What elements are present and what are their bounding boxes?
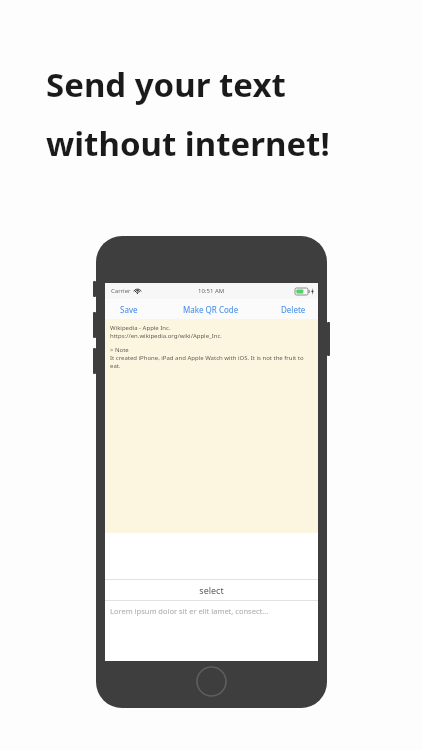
button[interactable]: Make QR Code	[169, 299, 253, 319]
button[interactable]: Wikipedia - Apple Inc.	[105, 319, 318, 533]
staticText: without internet!	[46, 121, 330, 166]
staticText: It created iPhone, iPad and Apple Watch …	[110, 354, 313, 370]
other: Home	[196, 666, 227, 697]
staticText: Send your text	[46, 62, 286, 107]
staticText: select	[199, 584, 224, 596]
staticText: Delete	[281, 304, 306, 315]
button[interactable]: select	[105, 580, 318, 600]
staticText: https://en.wikipedia.org/wiki/Apple_Inc.	[110, 332, 222, 340]
button[interactable]: Save	[105, 299, 169, 319]
staticText: Wikipedia - Apple Inc.	[110, 324, 171, 332]
staticText: Make QR Code	[183, 304, 239, 315]
button[interactable]: Delete	[253, 299, 318, 319]
staticText: Carrier	[111, 287, 131, 295]
button[interactable]: Lorem ipsum dolor sit er elit lamet, con…	[105, 601, 318, 621]
staticText: > Note	[110, 346, 129, 354]
staticText: Lorem ipsum dolor sit er elit lamet, con…	[110, 606, 269, 616]
staticText: Save	[120, 304, 138, 315]
staticText: 10:51 AM	[198, 287, 225, 295]
